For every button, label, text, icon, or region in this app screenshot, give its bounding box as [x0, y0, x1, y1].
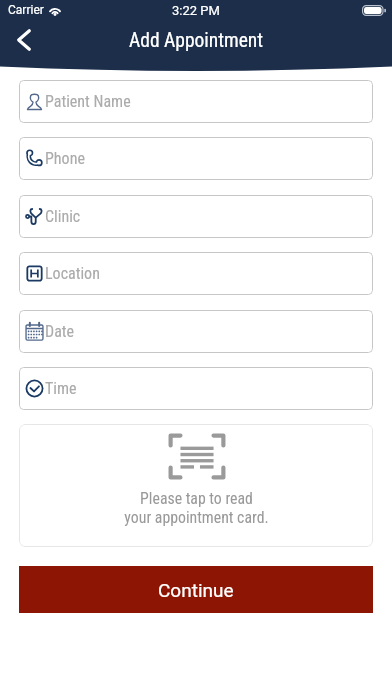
- button[interactable]: Patient Name: [19, 80, 373, 123]
- staticText: Add Appointment: [129, 29, 264, 52]
- button[interactable]: Clinic: [19, 195, 373, 238]
- staticText: Location: [45, 264, 100, 283]
- button[interactable]: Time: [19, 367, 373, 410]
- staticText: Clinic: [45, 207, 81, 226]
- staticText: Please tap to read your appointment card…: [124, 489, 269, 527]
- staticText: Continue: [158, 579, 234, 601]
- staticText: 3:22 PM: [172, 3, 220, 18]
- button[interactable]: Phone: [19, 137, 373, 180]
- staticText: Time: [45, 379, 77, 398]
- button[interactable]: Location: [19, 252, 373, 295]
- staticText: Patient Name: [45, 92, 131, 111]
- button[interactable]: Date: [19, 310, 373, 353]
- staticText: Date: [45, 322, 75, 341]
- button[interactable]: Back: [0, 20, 48, 60]
- staticText: Phone: [45, 149, 85, 168]
- button[interactable]: Continue: [19, 566, 373, 613]
- staticText: Carrier: [8, 3, 44, 17]
- button[interactable]: Please tap to read your appointment card…: [19, 424, 373, 547]
